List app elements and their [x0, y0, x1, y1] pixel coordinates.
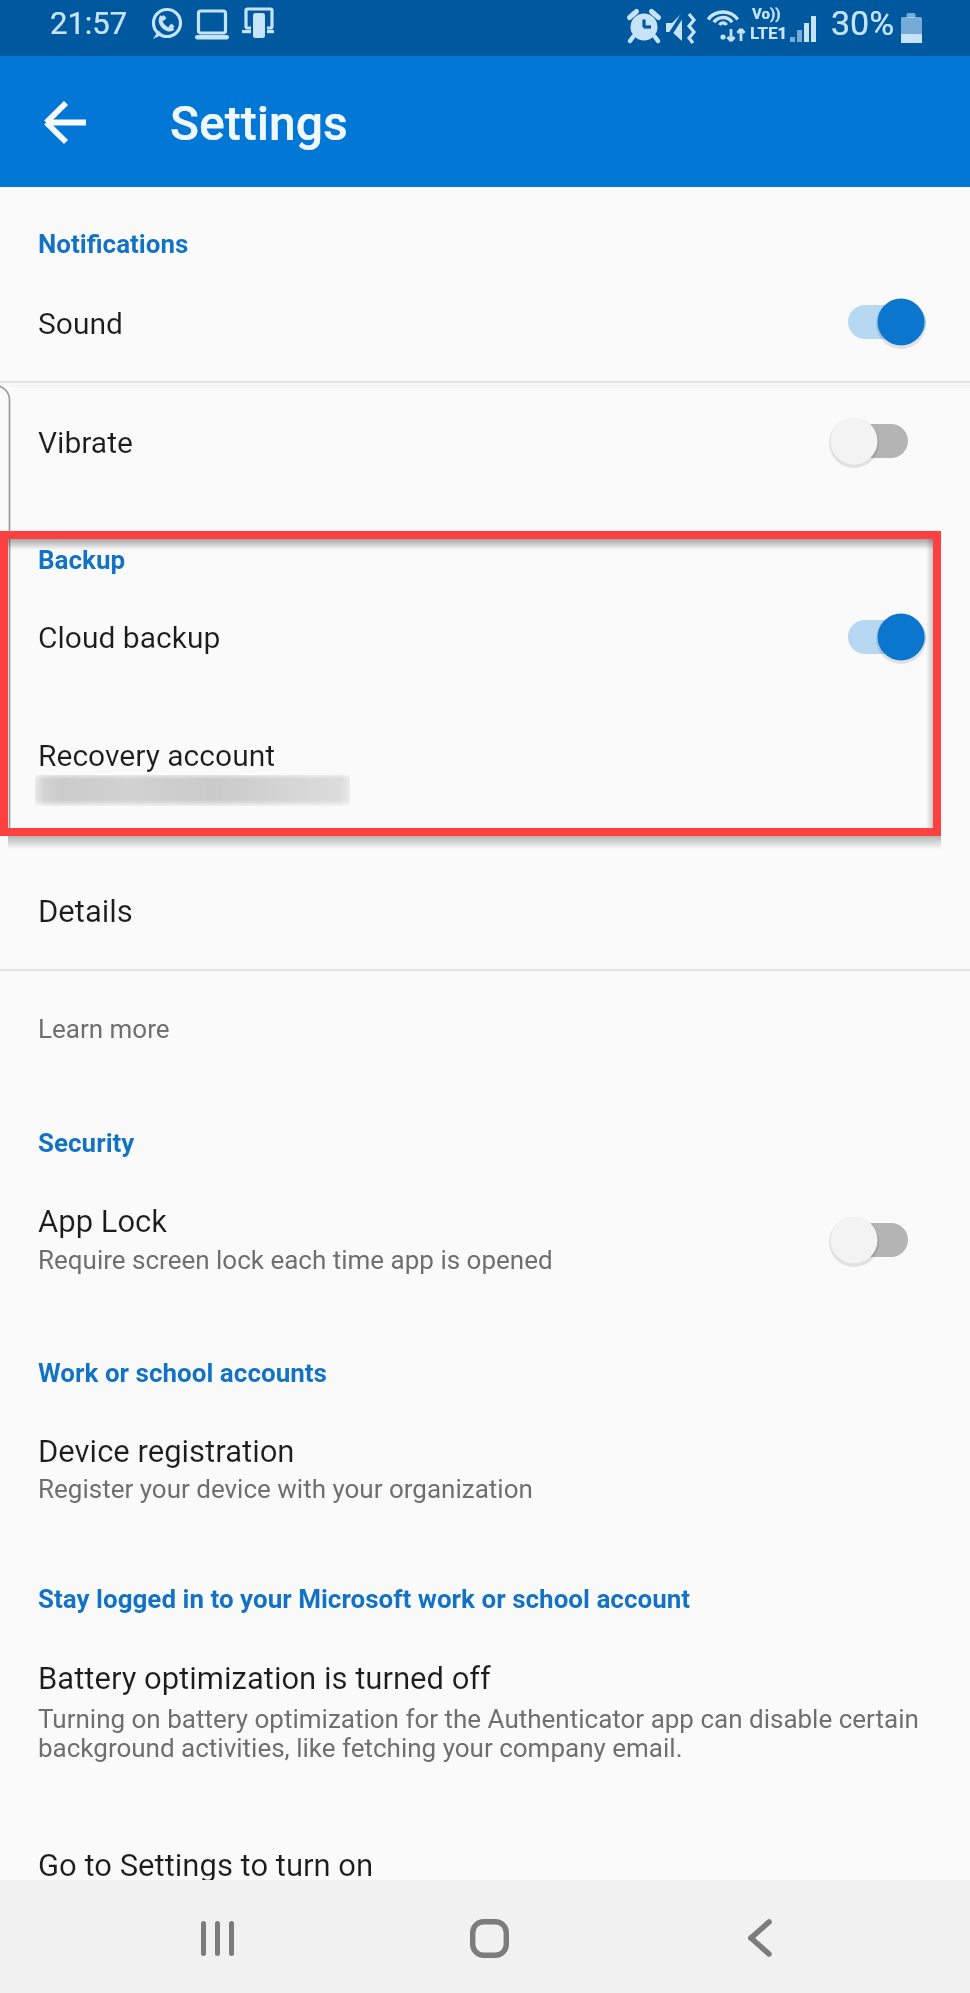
- button[interactable]: Learn more: [0, 985, 970, 1065]
- staticText: App Lock: [38, 1203, 168, 1239]
- staticText: Settings: [170, 95, 348, 151]
- staticText: Backup: [38, 545, 126, 575]
- button[interactable]: Sound: [0, 267, 970, 381]
- staticText: Stay logged in to your Microsoft work or…: [38, 1584, 691, 1614]
- staticText: Device registration: [38, 1433, 295, 1469]
- button[interactable]: Recent apps: [127, 1880, 307, 1993]
- button[interactable]: App Lock: [0, 1180, 970, 1300]
- button[interactable]: Details: [0, 860, 970, 969]
- staticText: Go to Settings to turn on: [38, 1847, 374, 1883]
- button[interactable]: Back: [20, 80, 104, 164]
- staticText: Turning on battery optimization for the …: [38, 1704, 933, 1763]
- button[interactable]: Back: [671, 1880, 851, 1993]
- button[interactable]: Go to Settings to turn on: [0, 1826, 970, 1880]
- staticText: Vo)): [752, 5, 781, 23]
- staticText: Learn more: [38, 1014, 170, 1044]
- button[interactable]: Home: [399, 1880, 579, 1993]
- staticText: Battery optimization is turned off: [38, 1660, 491, 1696]
- staticText: 21:57: [50, 5, 128, 41]
- staticText: Cloud backup: [38, 620, 221, 655]
- button[interactable]: Cloud backup: [0, 582, 970, 700]
- button[interactable]: Device registration: [0, 1412, 970, 1525]
- staticText: Details: [38, 893, 133, 929]
- staticText: LTE1: [750, 23, 788, 43]
- staticText: Recovery account: [38, 738, 276, 773]
- staticText: Work or school accounts: [38, 1358, 327, 1388]
- button[interactable]: Vibrate: [0, 383, 970, 500]
- staticText: Notifications: [38, 229, 189, 259]
- staticText: Register your device with your organizat…: [38, 1474, 533, 1504]
- staticText: Require screen lock each time app is ope…: [38, 1245, 553, 1275]
- staticText: Security: [38, 1128, 135, 1158]
- staticText: 30%: [831, 3, 895, 43]
- staticText: Vibrate: [38, 425, 133, 460]
- button[interactable]: Recovery account: [0, 700, 970, 835]
- staticText: Sound: [38, 306, 123, 341]
- button[interactable]: Battery optimization is turned off: [0, 1640, 970, 1790]
